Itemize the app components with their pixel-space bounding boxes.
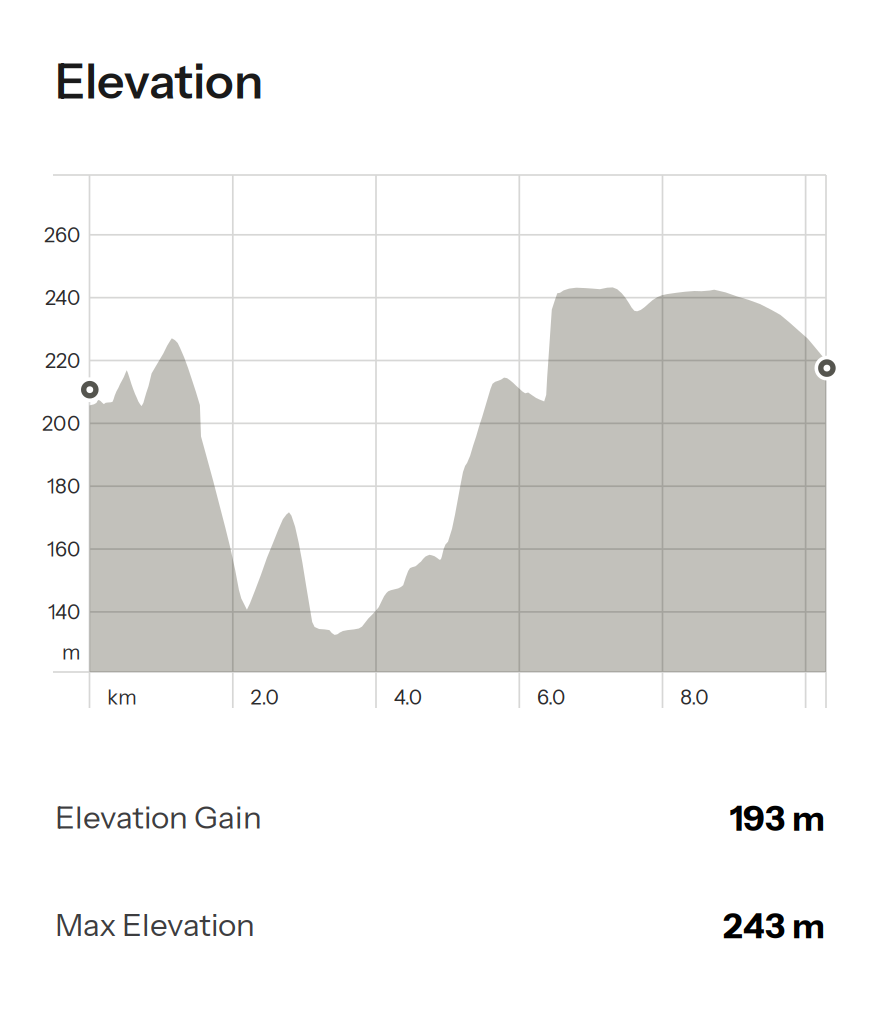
staticText: 240	[45, 286, 80, 310]
staticText: m	[62, 640, 80, 664]
staticText: Max Elevation	[55, 905, 255, 944]
staticText: km	[107, 685, 136, 709]
staticText: 2.0	[251, 685, 279, 709]
staticText: 160	[47, 537, 80, 561]
staticText: 6.0	[537, 685, 565, 709]
staticText: 260	[44, 223, 80, 247]
staticText: 220	[45, 348, 80, 373]
staticText: 193 m	[730, 797, 825, 839]
staticText: 140	[48, 600, 80, 624]
staticText: 243 m	[723, 904, 825, 947]
staticText: Elevation Gain	[55, 798, 262, 836]
staticText: Elevation	[55, 52, 263, 111]
staticText: 4.0	[394, 685, 422, 709]
staticText: 200	[42, 411, 80, 436]
staticText: 180	[47, 474, 80, 499]
staticText: 8.0	[680, 685, 708, 709]
